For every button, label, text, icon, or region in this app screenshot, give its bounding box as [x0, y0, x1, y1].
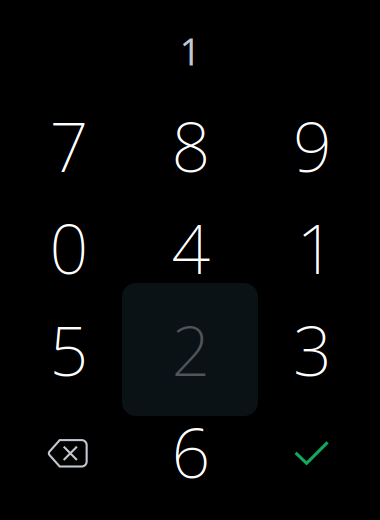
button[interactable]: 8	[129, 94, 250, 196]
button[interactable]: 1	[251, 196, 372, 298]
staticText: 5	[49, 304, 88, 395]
button[interactable]: 4	[129, 196, 250, 298]
staticText: 0	[49, 202, 88, 293]
button[interactable]: 3	[251, 298, 372, 400]
staticText: 2	[171, 304, 210, 395]
staticText: 1	[179, 26, 200, 76]
button[interactable]: 0	[7, 196, 128, 298]
button[interactable]: 2	[129, 298, 250, 400]
staticText: 9	[293, 100, 332, 191]
staticText: 8	[171, 100, 210, 191]
button[interactable]: 6	[129, 400, 250, 502]
button[interactable]: Confirm	[251, 402, 372, 504]
button[interactable]: 9	[251, 94, 372, 196]
staticText: 1	[296, 202, 335, 293]
button[interactable]: 5	[7, 298, 128, 400]
button[interactable]: 7	[7, 94, 128, 196]
staticText: 7	[49, 100, 88, 191]
button[interactable]: Delete	[7, 402, 128, 504]
staticText: 3	[293, 304, 332, 395]
staticText: 6	[171, 406, 210, 497]
staticText: 4	[171, 202, 210, 293]
